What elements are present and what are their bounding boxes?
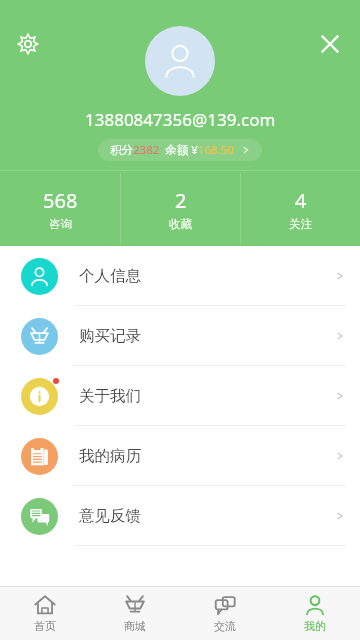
button[interactable]: 关于我们: [0, 366, 360, 425]
staticText: 我的病历: [79, 446, 141, 466]
button[interactable]: Settings: [8, 24, 48, 64]
staticText: 积分2382 余额 ¥168.50: [110, 142, 234, 158]
button[interactable]: 个人信息: [0, 246, 360, 305]
staticText: 关注: [289, 217, 312, 231]
staticText: 首页: [34, 619, 56, 633]
button[interactable]: 首页: [0, 587, 90, 640]
button[interactable]: 意见反馈: [0, 486, 360, 545]
button[interactable]: 我的病历: [0, 426, 360, 485]
button[interactable]: 我的: [270, 587, 360, 640]
button[interactable]: 商城: [90, 587, 180, 640]
staticText: 关于我们: [79, 386, 141, 406]
staticText: 2: [175, 187, 187, 214]
staticText: 交流: [214, 619, 236, 633]
button[interactable]: 交流: [180, 587, 270, 640]
staticText: 购买记录: [79, 326, 141, 346]
staticText: 13880847356@139.com: [85, 108, 276, 131]
button[interactable]: Profile photo: [145, 26, 215, 96]
staticText: 个人信息: [79, 266, 141, 286]
staticText: 568: [43, 187, 78, 214]
staticText: 意见反馈: [79, 506, 141, 526]
staticText: 商城: [124, 619, 146, 633]
button[interactable]: Close: [310, 24, 350, 64]
staticText: 咨询: [49, 217, 72, 231]
staticText: 我的: [304, 619, 326, 633]
button[interactable]: 购买记录: [0, 306, 360, 365]
button[interactable]: 积分2382 余额 ¥168.50: [110, 139, 250, 161]
button[interactable]: 568: [0, 171, 120, 246]
staticText: 收藏: [169, 217, 192, 231]
button[interactable]: 2: [121, 171, 240, 246]
button[interactable]: 4: [241, 171, 360, 246]
staticText: 4: [295, 187, 307, 214]
